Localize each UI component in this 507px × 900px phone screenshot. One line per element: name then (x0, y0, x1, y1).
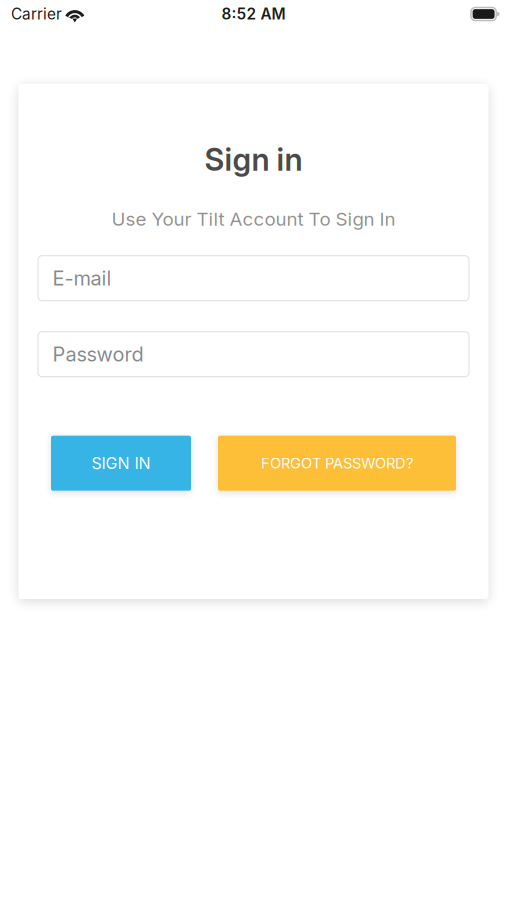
button[interactable]: Password (38, 332, 469, 377)
staticText: 8:52 AM (221, 5, 285, 23)
staticText: Use Your Tilt Account To Sign In (111, 208, 395, 230)
staticText: E-mail (52, 266, 111, 290)
button[interactable]: FORGOT PASSWORD? (218, 436, 456, 491)
button[interactable]: SIGN IN (51, 436, 191, 491)
staticText: FORGOT PASSWORD? (261, 454, 413, 472)
staticText: Password (52, 342, 143, 366)
staticText: Sign in (204, 141, 302, 178)
button[interactable]: E-mail (38, 256, 469, 301)
staticText: Carrier (11, 5, 62, 23)
staticText: SIGN IN (91, 453, 150, 473)
